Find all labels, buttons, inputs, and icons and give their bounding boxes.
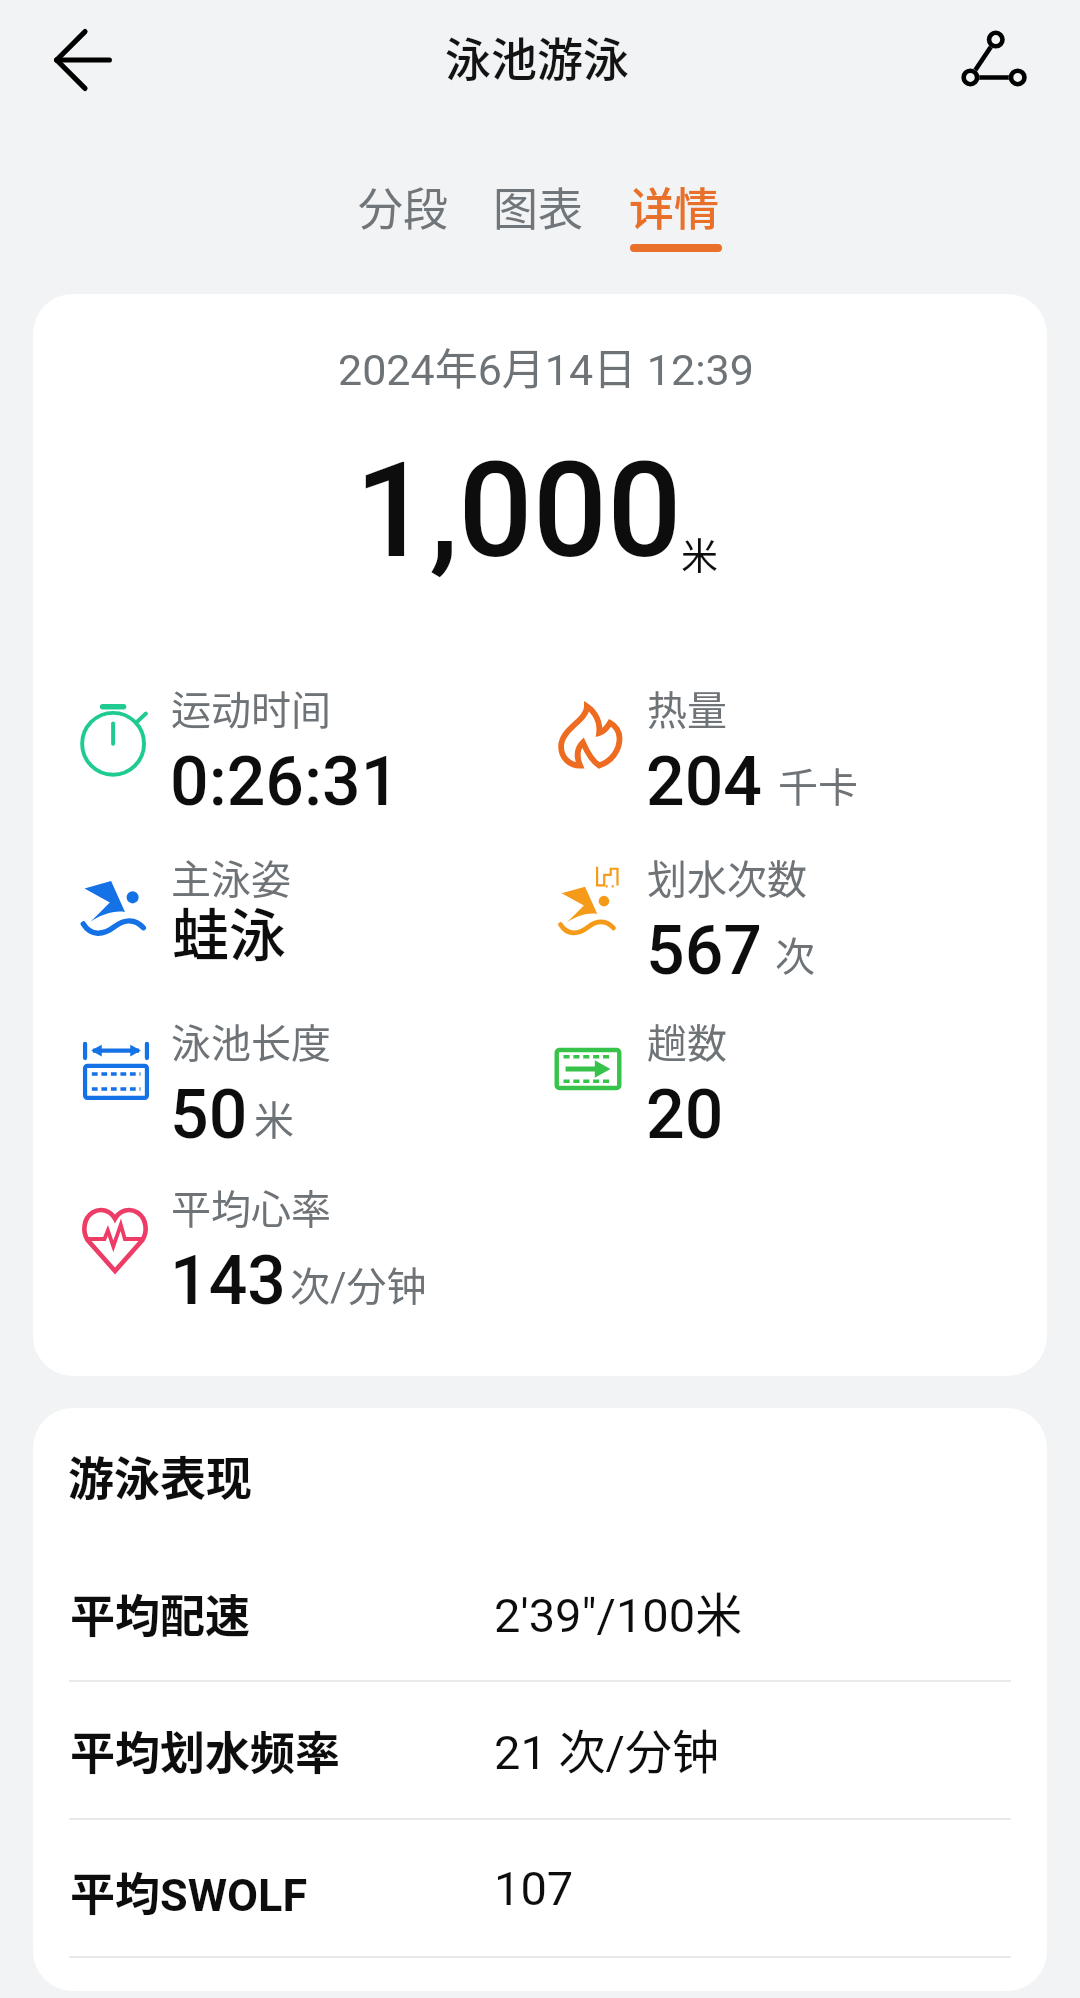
button[interactable] bbox=[74, 1007, 494, 1155]
staticText: 图表 bbox=[493, 174, 584, 239]
staticText: 平均划水频率 bbox=[70, 1718, 341, 1783]
staticText: 详情 bbox=[629, 174, 720, 239]
staticText: 567 bbox=[646, 911, 762, 991]
staticText: 千卡 bbox=[778, 756, 858, 814]
staticText: 2024年6月14日 12:39 bbox=[338, 335, 754, 397]
staticText: 平均心率 bbox=[171, 1178, 331, 1236]
staticText: 分段 bbox=[358, 174, 449, 239]
button[interactable] bbox=[546, 1007, 966, 1155]
staticText: 平均配速 bbox=[70, 1581, 251, 1646]
staticText: 1,000 bbox=[355, 434, 682, 588]
staticText: 米 bbox=[254, 1089, 294, 1147]
staticText: 运动时间 bbox=[171, 679, 331, 737]
staticText: 米 bbox=[681, 527, 718, 581]
button[interactable]: 分段 bbox=[352, 174, 454, 244]
staticText: 2'39"/100米 bbox=[494, 1577, 743, 1645]
staticText: 主泳姿 bbox=[171, 848, 291, 906]
button[interactable]: 平均配速 bbox=[33, 1542, 1047, 1680]
staticText: 趟数 bbox=[647, 1012, 727, 1070]
staticText: 204 bbox=[646, 742, 762, 822]
button[interactable]: Back bbox=[31, 8, 135, 112]
button[interactable]: 图表 bbox=[487, 174, 589, 244]
staticText: 143 bbox=[170, 1241, 286, 1321]
staticText: 20 bbox=[646, 1075, 724, 1155]
staticText: 21 次/分钟 bbox=[494, 1714, 719, 1782]
staticText: 107 bbox=[494, 1861, 574, 1916]
staticText: 泳池长度 bbox=[171, 1012, 331, 1070]
staticText: 泳池游泳 bbox=[445, 23, 629, 90]
button[interactable] bbox=[549, 674, 969, 822]
button[interactable]: Share bbox=[942, 8, 1046, 112]
button[interactable]: 详情 bbox=[623, 174, 725, 252]
staticText: 游泳表现 bbox=[68, 1442, 252, 1509]
button[interactable] bbox=[550, 843, 970, 991]
button[interactable]: 平均SWOLF bbox=[33, 1818, 1047, 1956]
button[interactable] bbox=[74, 843, 494, 991]
button[interactable]: 平均划水频率 bbox=[33, 1680, 1047, 1818]
button[interactable] bbox=[73, 674, 493, 822]
staticText: 平均SWOLF bbox=[70, 1859, 308, 1924]
staticText: 蛙泳 bbox=[172, 890, 286, 973]
staticText: 50 bbox=[170, 1075, 248, 1155]
button[interactable] bbox=[73, 1173, 493, 1321]
staticText: 划水次数 bbox=[647, 848, 807, 906]
staticText: 热量 bbox=[647, 679, 727, 737]
staticText: 次 bbox=[775, 925, 815, 983]
staticText: 0:26:31 bbox=[170, 742, 400, 822]
staticText: 次/分钟 bbox=[290, 1255, 427, 1313]
